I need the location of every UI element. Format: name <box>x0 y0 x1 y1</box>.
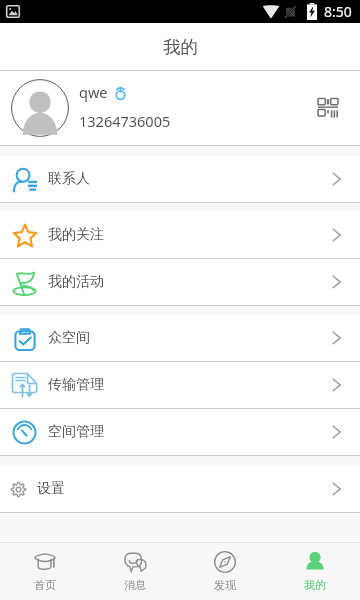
staticText: 13264736005 <box>79 111 171 131</box>
button[interactable]: 我的 <box>270 543 360 600</box>
button[interactable]: 我的关注 <box>0 211 360 258</box>
staticText: 传输管理 <box>48 376 104 394</box>
button[interactable]: 空间管理 <box>0 409 360 455</box>
staticText: 设置 <box>37 480 65 498</box>
button[interactable]: 我的活动 <box>0 259 360 305</box>
button[interactable]: 联系人 <box>0 156 360 202</box>
button[interactable]: 设置 <box>0 466 360 512</box>
staticText: 我的 <box>304 578 326 592</box>
button[interactable]: 首页 <box>0 543 90 600</box>
staticText: 发现 <box>214 578 236 592</box>
staticText: 首页 <box>34 578 56 592</box>
staticText: 我的关注 <box>48 226 104 244</box>
button[interactable]: 发现 <box>180 543 270 600</box>
button[interactable]: Scan QR code <box>312 92 344 124</box>
staticText: 消息 <box>124 578 146 592</box>
button[interactable]: 众空间 <box>0 315 360 361</box>
staticText: 8:50 <box>324 2 352 21</box>
staticText: 众空间 <box>48 329 90 347</box>
staticText: 联系人 <box>48 170 90 188</box>
button[interactable]: 消息 <box>90 543 180 600</box>
staticText: 空间管理 <box>48 423 104 441</box>
staticText: 我的 <box>163 36 198 58</box>
staticText: qwe <box>79 82 108 102</box>
staticText: 我的活动 <box>48 273 104 291</box>
button[interactable]: qwe <box>0 71 360 145</box>
button[interactable]: 传输管理 <box>0 362 360 408</box>
